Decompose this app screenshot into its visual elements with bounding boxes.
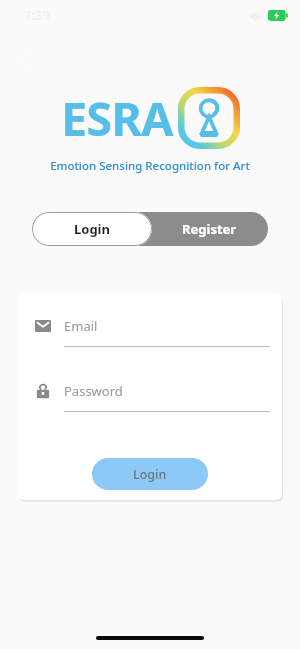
button[interactable]: Email bbox=[18, 313, 282, 347]
button[interactable]: Login bbox=[92, 458, 208, 490]
staticText: Login bbox=[133, 466, 167, 483]
other: Password bbox=[34, 382, 52, 400]
button[interactable]: Login bbox=[32, 212, 152, 246]
staticText: Register bbox=[182, 220, 237, 238]
button[interactable]: Password bbox=[18, 378, 282, 412]
other: Email bbox=[34, 317, 52, 335]
staticText: Emotion Sensing Recognition for Art bbox=[50, 158, 250, 174]
staticText: ESRA bbox=[61, 86, 173, 150]
staticText: Login bbox=[74, 220, 110, 238]
button[interactable]: Register bbox=[150, 212, 268, 246]
staticText: Email bbox=[64, 317, 98, 335]
staticText: Password bbox=[64, 382, 123, 400]
